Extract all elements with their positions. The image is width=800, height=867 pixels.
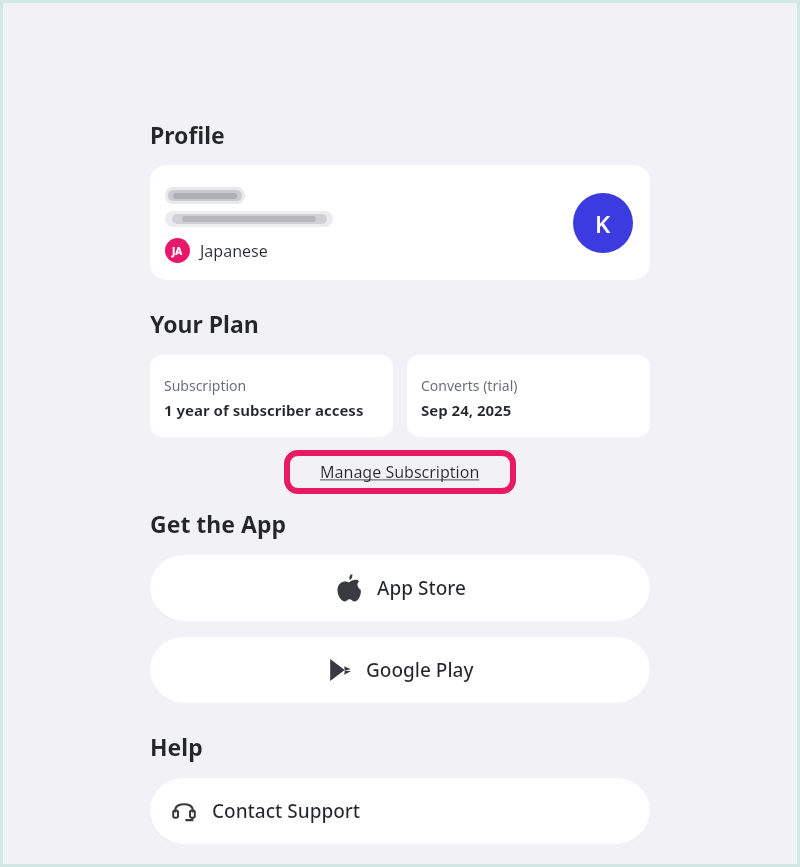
staticText: App Store [377, 575, 466, 601]
button[interactable]: Contact Support [150, 778, 650, 844]
staticText: Help [150, 731, 203, 762]
button[interactable]: Converts (trial) [407, 355, 650, 437]
staticText: Manage Subscription [320, 461, 480, 483]
staticText: 1 year of subscriber access [164, 400, 364, 420]
staticText: JA [172, 244, 183, 258]
staticText: Japanese [200, 240, 268, 262]
button[interactable]: Subscription [150, 355, 393, 437]
staticText: Contact Support [212, 798, 361, 824]
button[interactable]: Account avatar [573, 193, 633, 253]
staticText: Your Plan [150, 308, 259, 339]
staticText: Profile [150, 119, 225, 150]
staticText: K [595, 207, 611, 240]
button[interactable]: Google Play [150, 637, 650, 703]
button[interactable]: App Store [150, 555, 650, 621]
staticText: Get the App [150, 508, 286, 539]
button[interactable]: Manage Subscription [284, 450, 516, 494]
button[interactable]: JA [150, 165, 650, 280]
staticText: Converts (trial) [421, 376, 518, 395]
staticText: Google Play [366, 657, 474, 683]
staticText: Subscription [164, 376, 247, 395]
staticText: Sep 24, 2025 [421, 400, 512, 420]
